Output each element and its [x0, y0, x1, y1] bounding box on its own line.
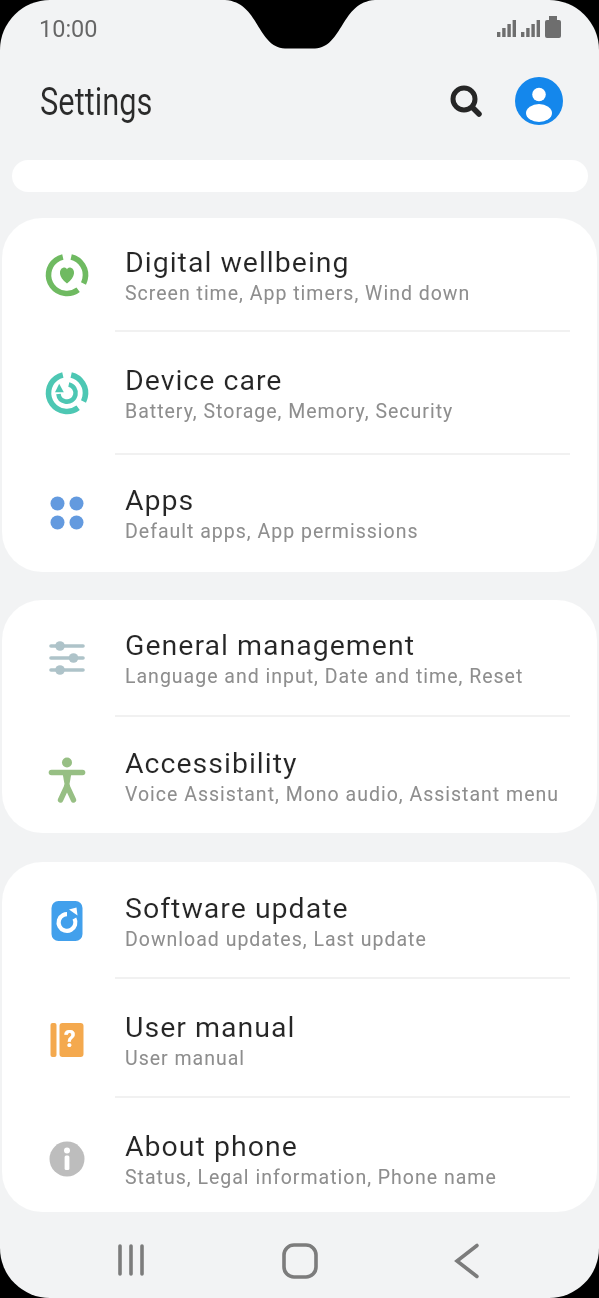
- button[interactable]: General management: [6, 601, 594, 715]
- button[interactable]: Apps: [6, 456, 594, 570]
- staticText: Apps: [125, 484, 195, 517]
- staticText: Settings: [40, 78, 153, 124]
- staticText: ?: [64, 1026, 76, 1053]
- button[interactable]: Software update: [6, 864, 594, 978]
- staticText: Battery, Storage, Memory, Security: [125, 400, 454, 423]
- staticText: Download updates, Last update: [125, 928, 427, 951]
- button[interactable]: [80, 1230, 184, 1290]
- button[interactable]: [416, 1230, 520, 1290]
- staticText: General management: [125, 629, 416, 662]
- staticText: Default apps, App permissions: [125, 520, 419, 543]
- staticText: About phone: [125, 1130, 298, 1163]
- button[interactable]: About phone: [6, 1102, 594, 1216]
- button[interactable]: Digital wellbeing: [6, 218, 594, 332]
- staticText: Status, Legal information, Phone name: [125, 1166, 497, 1189]
- staticText: User manual: [125, 1047, 246, 1070]
- staticText: Language and input, Date and time, Reset: [125, 665, 524, 688]
- staticText: 10:00: [39, 15, 98, 43]
- button[interactable]: [444, 79, 488, 123]
- button[interactable]: User manual: [6, 983, 594, 1097]
- button[interactable]: Accessibility: [6, 719, 594, 833]
- staticText: Digital wellbeing: [125, 246, 350, 279]
- staticText: Accessibility: [125, 747, 298, 780]
- staticText: Screen time, App timers, Wind down: [125, 282, 471, 305]
- staticText: User manual: [125, 1011, 296, 1044]
- button[interactable]: [515, 77, 563, 125]
- staticText: Software update: [125, 892, 349, 925]
- staticText: Voice Assistant, Mono audio, Assistant m…: [125, 783, 560, 806]
- button[interactable]: [248, 1230, 352, 1290]
- staticText: Device care: [125, 364, 283, 397]
- button[interactable]: Device care: [6, 336, 594, 450]
